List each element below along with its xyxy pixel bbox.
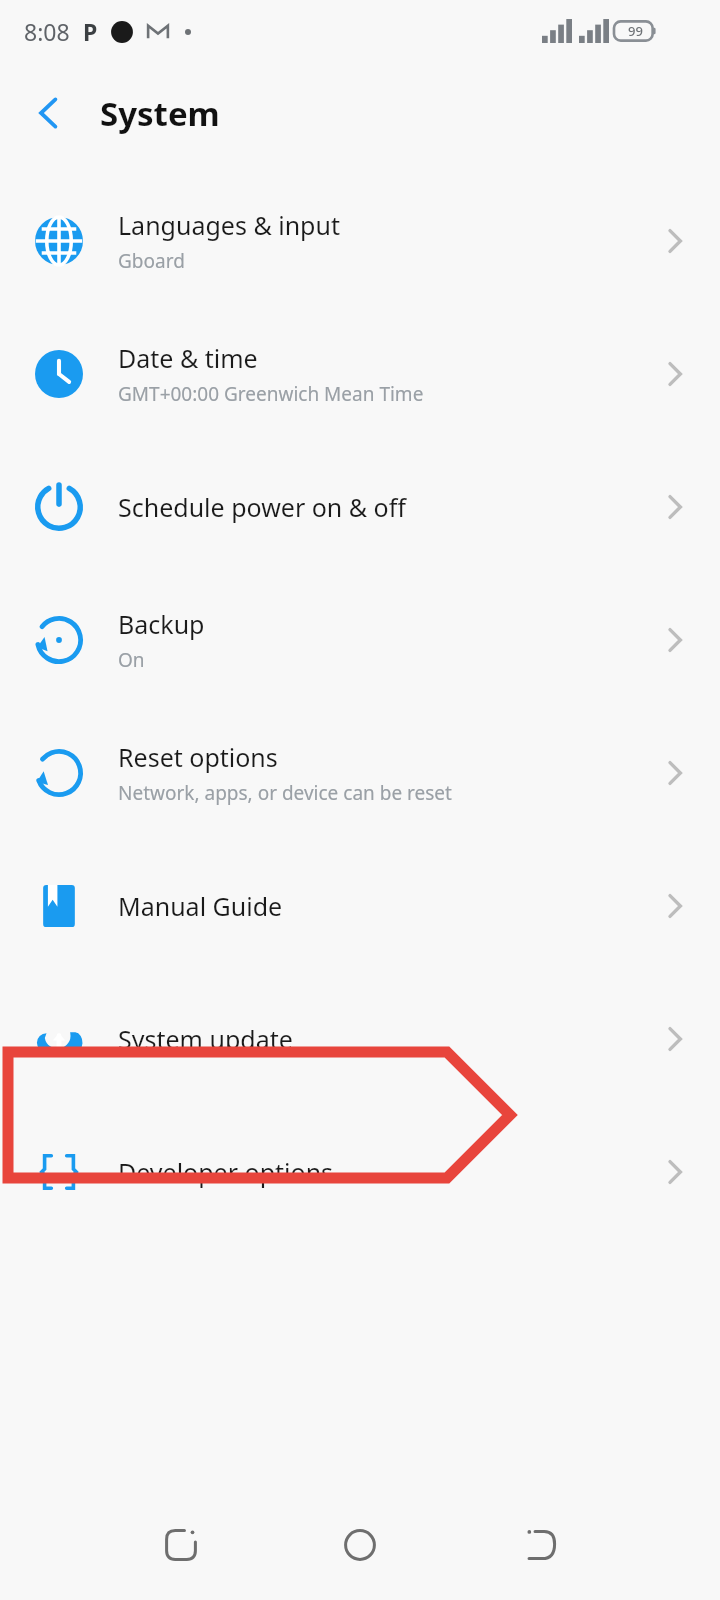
staticText: Schedule power on & off — [118, 490, 406, 524]
button[interactable]: Backup — [0, 573, 720, 706]
button[interactable]: Date & time — [0, 307, 720, 440]
staticText: Date & time — [118, 341, 258, 375]
button[interactable]: Back — [510, 1514, 572, 1576]
staticText: P — [83, 16, 98, 47]
button[interactable]: Back — [20, 84, 78, 142]
staticText: System — [100, 91, 220, 136]
staticText: Manual Guide — [118, 889, 283, 923]
button[interactable]: Recent apps — [150, 1514, 212, 1576]
staticText: Reset options — [118, 740, 278, 774]
staticText: On — [118, 647, 145, 673]
button[interactable]: Reset options — [0, 706, 720, 839]
button[interactable]: System update — [0, 972, 720, 1105]
staticText: Network, apps, or device can be reset — [118, 780, 452, 806]
staticText: Gboard — [118, 248, 185, 274]
staticText: GMT+00:00 Greenwich Mean Time — [118, 381, 424, 407]
button[interactable]: Developer options — [0, 1105, 720, 1238]
staticText: 8:08 — [24, 16, 70, 47]
button[interactable]: Manual Guide — [0, 839, 720, 972]
staticText: Developer options — [118, 1155, 334, 1189]
staticText: Languages & input — [118, 208, 340, 242]
button[interactable]: Home — [329, 1514, 391, 1576]
staticText: System update — [118, 1022, 293, 1056]
staticText: Backup — [118, 607, 205, 641]
button[interactable]: Languages & input — [0, 174, 720, 307]
button[interactable]: Schedule power on & off — [0, 440, 720, 573]
staticText: 99 — [628, 22, 643, 40]
